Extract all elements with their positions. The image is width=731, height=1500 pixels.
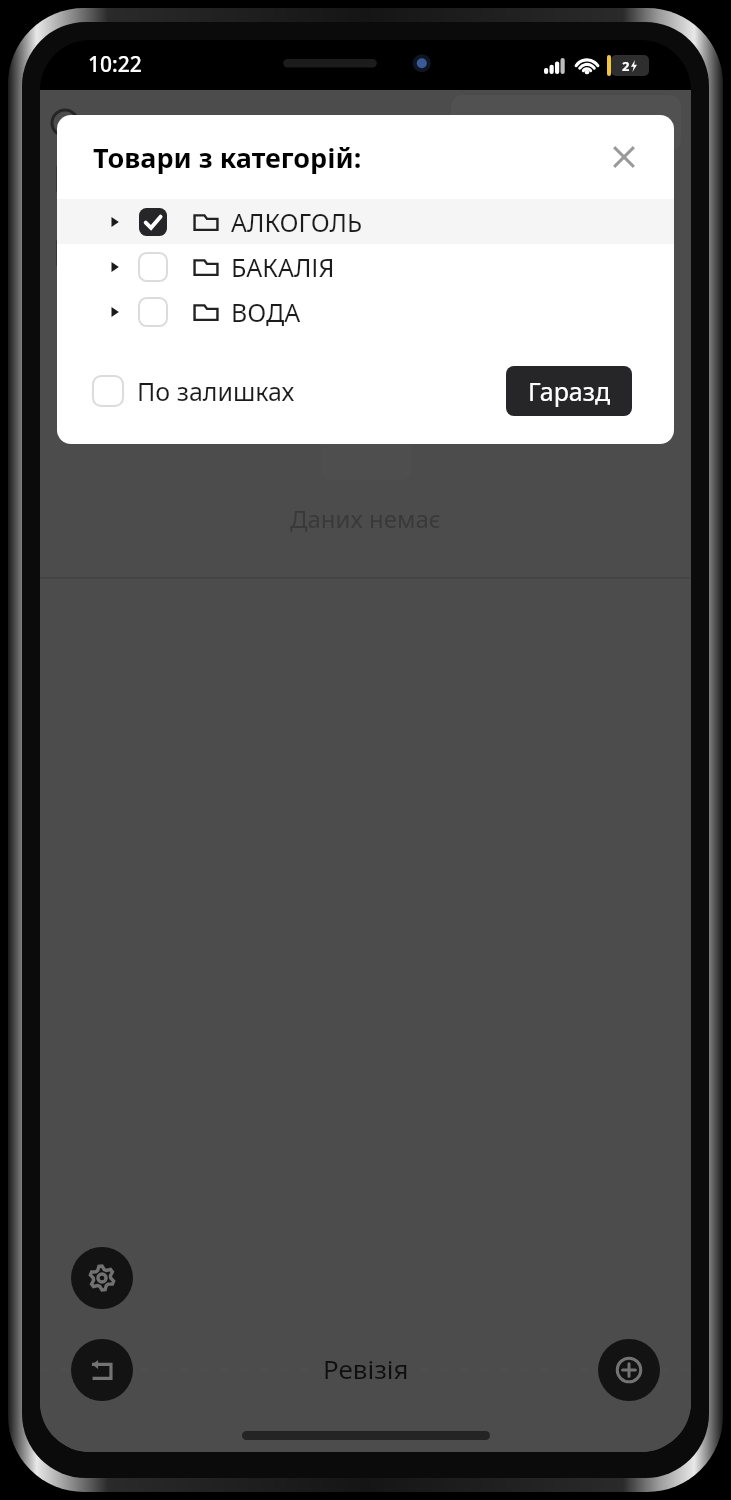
button[interactable]: Back — [71, 1339, 133, 1401]
button[interactable]: БАКАЛІЯ — [57, 244, 674, 289]
button[interactable]: Add — [598, 1339, 660, 1401]
staticText: ВОДА — [231, 295, 301, 329]
staticText: По залишках — [137, 374, 295, 408]
button[interactable]: По залишках — [93, 374, 295, 408]
button[interactable]: Гаразд — [506, 366, 632, 416]
staticText: АЛКОГОЛЬ — [231, 205, 363, 239]
staticText: Товари з категорій: — [93, 139, 362, 176]
staticText: Даних немає — [290, 502, 441, 535]
button[interactable]: АЛКОГОЛЬ — [57, 199, 674, 244]
staticText: 10:22 — [88, 50, 142, 79]
staticText: 2 — [622, 57, 630, 75]
button[interactable]: ВОДА — [57, 289, 674, 334]
staticText: Ревізія — [323, 1351, 409, 1386]
staticText: БАКАЛІЯ — [231, 250, 335, 284]
staticText: Гаразд — [528, 374, 611, 408]
button[interactable]: Settings — [71, 1247, 133, 1309]
button[interactable]: Close — [600, 133, 648, 181]
